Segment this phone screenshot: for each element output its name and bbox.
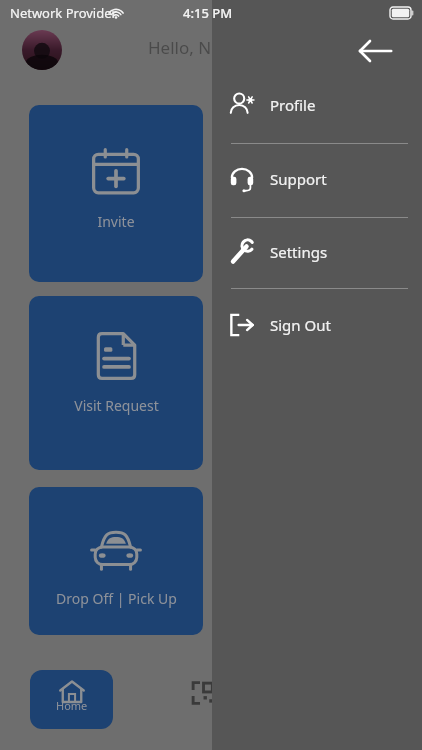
staticText: 4:15 PM [183, 4, 233, 22]
staticText: Sign Out [270, 315, 331, 335]
button[interactable]: Home [30, 670, 113, 729]
button[interactable]: Settings [212, 231, 422, 273]
staticText: Settings [270, 242, 328, 262]
button[interactable]: Support [212, 158, 422, 200]
button[interactable]: Sign Out [212, 304, 422, 346]
staticText: Home [56, 698, 88, 713]
button[interactable]: Profile [212, 84, 422, 126]
staticText: Support [270, 169, 327, 189]
staticText: Network Provider [10, 4, 117, 22]
button[interactable]: Scan QR code [190, 680, 216, 706]
button[interactable]: Visit Request [29, 296, 203, 470]
staticText: Profile [270, 95, 316, 115]
button[interactable]: Drop Off | Pick Up [29, 487, 203, 635]
button[interactable]: Back [356, 31, 396, 71]
staticText: Drop Off | Pick Up [56, 589, 177, 608]
button[interactable]: Invite [29, 105, 203, 282]
staticText: Invite [97, 212, 135, 231]
staticText: Hello, Nu [148, 36, 222, 59]
button[interactable]: Profile picture [22, 30, 62, 70]
staticText: Visit Request [74, 396, 159, 415]
